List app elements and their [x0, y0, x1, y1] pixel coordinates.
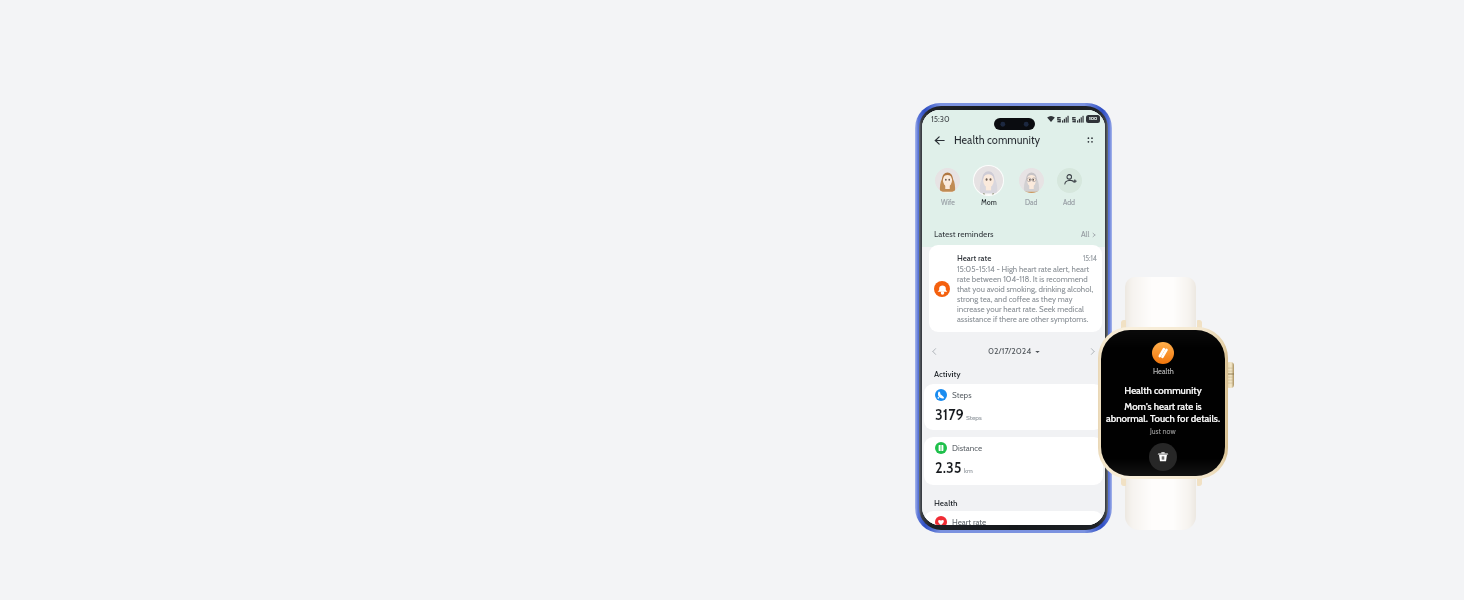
button[interactable]: Heart rate: [924, 511, 1103, 525]
button[interactable]: Next day: [1088, 347, 1097, 356]
staticText: 100: [1089, 116, 1098, 122]
staticText: 02/17/2024: [988, 346, 1032, 356]
staticText: 15:14: [1083, 254, 1097, 263]
staticText: 2.35: [935, 459, 962, 477]
button[interactable]: Wife: [935, 168, 960, 207]
staticText: Latest reminders: [934, 229, 994, 239]
staticText: Wife: [941, 198, 955, 207]
button[interactable]: Dad: [1019, 168, 1044, 207]
button[interactable]: Heart rate: [929, 245, 1102, 332]
button[interactable]: Previous day: [930, 347, 939, 356]
staticText: Heart rate: [952, 517, 987, 525]
staticText: 3179: [935, 406, 964, 424]
button[interactable]: All: [1081, 230, 1097, 239]
staticText: Health: [934, 498, 958, 508]
staticText: Steps: [952, 390, 972, 400]
staticText: Steps: [966, 414, 982, 422]
staticText: km: [964, 467, 973, 475]
staticText: Health community: [1124, 385, 1202, 397]
staticText: Activity: [934, 369, 961, 379]
staticText: Add: [1063, 198, 1076, 207]
staticText: Health: [1153, 367, 1174, 376]
staticText: Distance: [952, 443, 983, 453]
button[interactable]: 02/17/2024: [988, 346, 1040, 356]
staticText: Health community: [954, 134, 1041, 147]
staticText: Mom: [981, 198, 997, 207]
staticText: 15:05-15:14 - High heart rate alert, hea…: [957, 264, 1097, 324]
staticText: Just now: [1150, 427, 1176, 436]
staticText: Mom's heart rate is abnormal. Touch for …: [1101, 401, 1225, 425]
staticText: 15:30: [931, 114, 950, 124]
staticText: Heart rate: [957, 253, 992, 263]
staticText: All: [1081, 230, 1090, 239]
button[interactable]: More options: [1085, 135, 1095, 145]
button[interactable]: Steps: [924, 384, 1103, 430]
button[interactable]: Delete: [1149, 443, 1177, 471]
staticText: Dad: [1025, 198, 1038, 207]
button[interactable]: Distance: [924, 437, 1103, 485]
button[interactable]: Mom: [973, 165, 1004, 207]
button[interactable]: Add member: [1057, 168, 1082, 207]
button[interactable]: Back: [934, 135, 945, 146]
